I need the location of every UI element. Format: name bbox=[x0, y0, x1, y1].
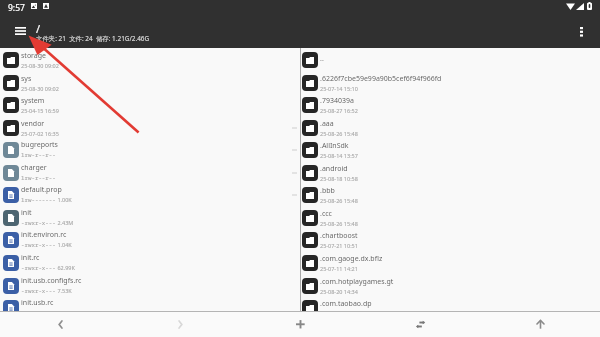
button[interactable]: init.usb.configfs.rc bbox=[0, 274, 300, 297]
staticText: 25-07-14 15:10 bbox=[320, 85, 358, 92]
staticText: 25-08-26 15:48 bbox=[320, 130, 358, 137]
staticText: .android bbox=[320, 164, 348, 174]
staticText: .AllInSdk bbox=[320, 141, 349, 151]
staticText: lrw------- bbox=[21, 196, 56, 204]
staticText: 25-08-26 15:48 bbox=[320, 197, 358, 204]
staticText: 9:57 bbox=[8, 2, 25, 14]
button[interactable]: init.usb.rc bbox=[0, 296, 300, 319]
staticText: .chartboost bbox=[320, 231, 358, 241]
staticText: sys bbox=[21, 74, 32, 84]
staticText: .ccc bbox=[320, 209, 332, 219]
button[interactable]: charger bbox=[0, 161, 300, 184]
staticText: 25-08-27 16:52 bbox=[320, 107, 358, 114]
button[interactable]: .aaa bbox=[299, 116, 599, 139]
staticText: .com.taobao.dp bbox=[320, 299, 372, 309]
staticText: 25-04-15 16:59 bbox=[21, 107, 59, 114]
button[interactable]: .android bbox=[299, 161, 599, 184]
staticText: .aaa bbox=[320, 119, 334, 129]
staticText: -rwxr-x--- bbox=[21, 287, 56, 295]
staticText: system bbox=[21, 96, 45, 106]
button[interactable]: .AllInSdk bbox=[299, 138, 599, 161]
staticText: vendor bbox=[21, 119, 45, 129]
button[interactable]: Up one level bbox=[480, 312, 600, 337]
button[interactable]: Back bbox=[0, 312, 120, 337]
staticText: 25-08-20 14:34 bbox=[320, 310, 358, 317]
staticText: 25-07-21 10:51 bbox=[320, 242, 358, 249]
staticText: 文件夹: 21 文件: 24 储存: 1.21G/2.46G bbox=[36, 34, 150, 43]
button[interactable]: storage bbox=[0, 48, 300, 71]
button[interactable]: sys bbox=[0, 71, 300, 94]
staticText: -rwxr-x--- bbox=[21, 309, 56, 317]
staticText: 1.04K bbox=[56, 241, 72, 248]
button[interactable]: init bbox=[0, 206, 300, 229]
button[interactable]: default.prop bbox=[0, 183, 300, 206]
staticText: charger bbox=[21, 163, 47, 173]
staticText: -rwxr-x--- bbox=[21, 219, 56, 227]
staticText: lrw-r--r-- bbox=[21, 151, 56, 159]
button[interactable]: .chartboost bbox=[299, 228, 599, 251]
staticText: init bbox=[21, 208, 32, 218]
button[interactable]: init.rc bbox=[0, 251, 300, 274]
staticText: 2.43M bbox=[56, 219, 74, 226]
staticText: 25-08-30 09:02 bbox=[21, 85, 59, 92]
staticText: 1.10K bbox=[56, 309, 72, 316]
staticText: -rwxr-x--- bbox=[21, 264, 56, 272]
staticText: init.usb.rc bbox=[21, 298, 54, 308]
staticText: 25-07-11 14:21 bbox=[320, 265, 358, 272]
button[interactable]: .com.taobao.dp bbox=[299, 296, 599, 319]
staticText: .7934039a bbox=[320, 96, 354, 106]
button[interactable]: .6226f7cbe59e99a90b5cef6f94f966fd bbox=[299, 71, 599, 94]
button[interactable]: New folder bbox=[240, 312, 360, 337]
button[interactable]: .7934039a bbox=[299, 93, 599, 116]
staticText: .com.gaoge.dx.bflz bbox=[320, 254, 383, 264]
button[interactable]: system bbox=[0, 93, 300, 116]
staticText: .6226f7cbe59e99a90b5cef6f94f966fd bbox=[320, 74, 442, 84]
button[interactable]: .com.hotplaygames.gt bbox=[299, 274, 599, 297]
staticText: init.environ.rc bbox=[21, 230, 67, 240]
staticText: 25-08-30 09:02 bbox=[21, 62, 59, 69]
button[interactable]: init.environ.rc bbox=[0, 228, 300, 251]
staticText: 1.00K bbox=[56, 196, 72, 203]
staticText: init.rc bbox=[21, 253, 40, 263]
staticText: .com.hotplaygames.gt bbox=[320, 277, 394, 287]
staticText: 25-07-02 16:35 bbox=[21, 130, 59, 137]
button[interactable]: .. bbox=[299, 48, 599, 71]
staticText: .. bbox=[320, 54, 324, 64]
button[interactable]: .com.gaoge.dx.bflz bbox=[299, 251, 599, 274]
staticText: 62.99K bbox=[56, 264, 75, 271]
button[interactable]: Transfer bbox=[360, 312, 480, 337]
staticText: default.prop bbox=[21, 185, 62, 195]
button[interactable]: vendor bbox=[0, 116, 300, 139]
staticText: .bbb bbox=[320, 186, 335, 196]
staticText: / bbox=[36, 21, 41, 36]
button[interactable]: bugreports bbox=[0, 138, 300, 161]
staticText: init.usb.configfs.rc bbox=[21, 276, 82, 286]
staticText: lrw-r--r-- bbox=[21, 174, 56, 182]
button[interactable]: Open navigation menu bbox=[7, 18, 33, 44]
staticText: storage bbox=[21, 51, 47, 61]
staticText: -rwxr-x--- bbox=[21, 241, 56, 249]
staticText: 25-08-14 13:57 bbox=[320, 152, 358, 159]
staticText: 7.53K bbox=[56, 287, 72, 294]
staticText: bugreports bbox=[21, 140, 58, 150]
staticText: 25-08-26 15:48 bbox=[320, 220, 358, 227]
button[interactable]: More options bbox=[568, 18, 594, 44]
staticText: 25-08-18 10:58 bbox=[320, 175, 358, 182]
staticText: 25-08-20 14:34 bbox=[320, 288, 358, 295]
button[interactable]: .bbb bbox=[299, 183, 599, 206]
button[interactable]: .ccc bbox=[299, 206, 599, 229]
